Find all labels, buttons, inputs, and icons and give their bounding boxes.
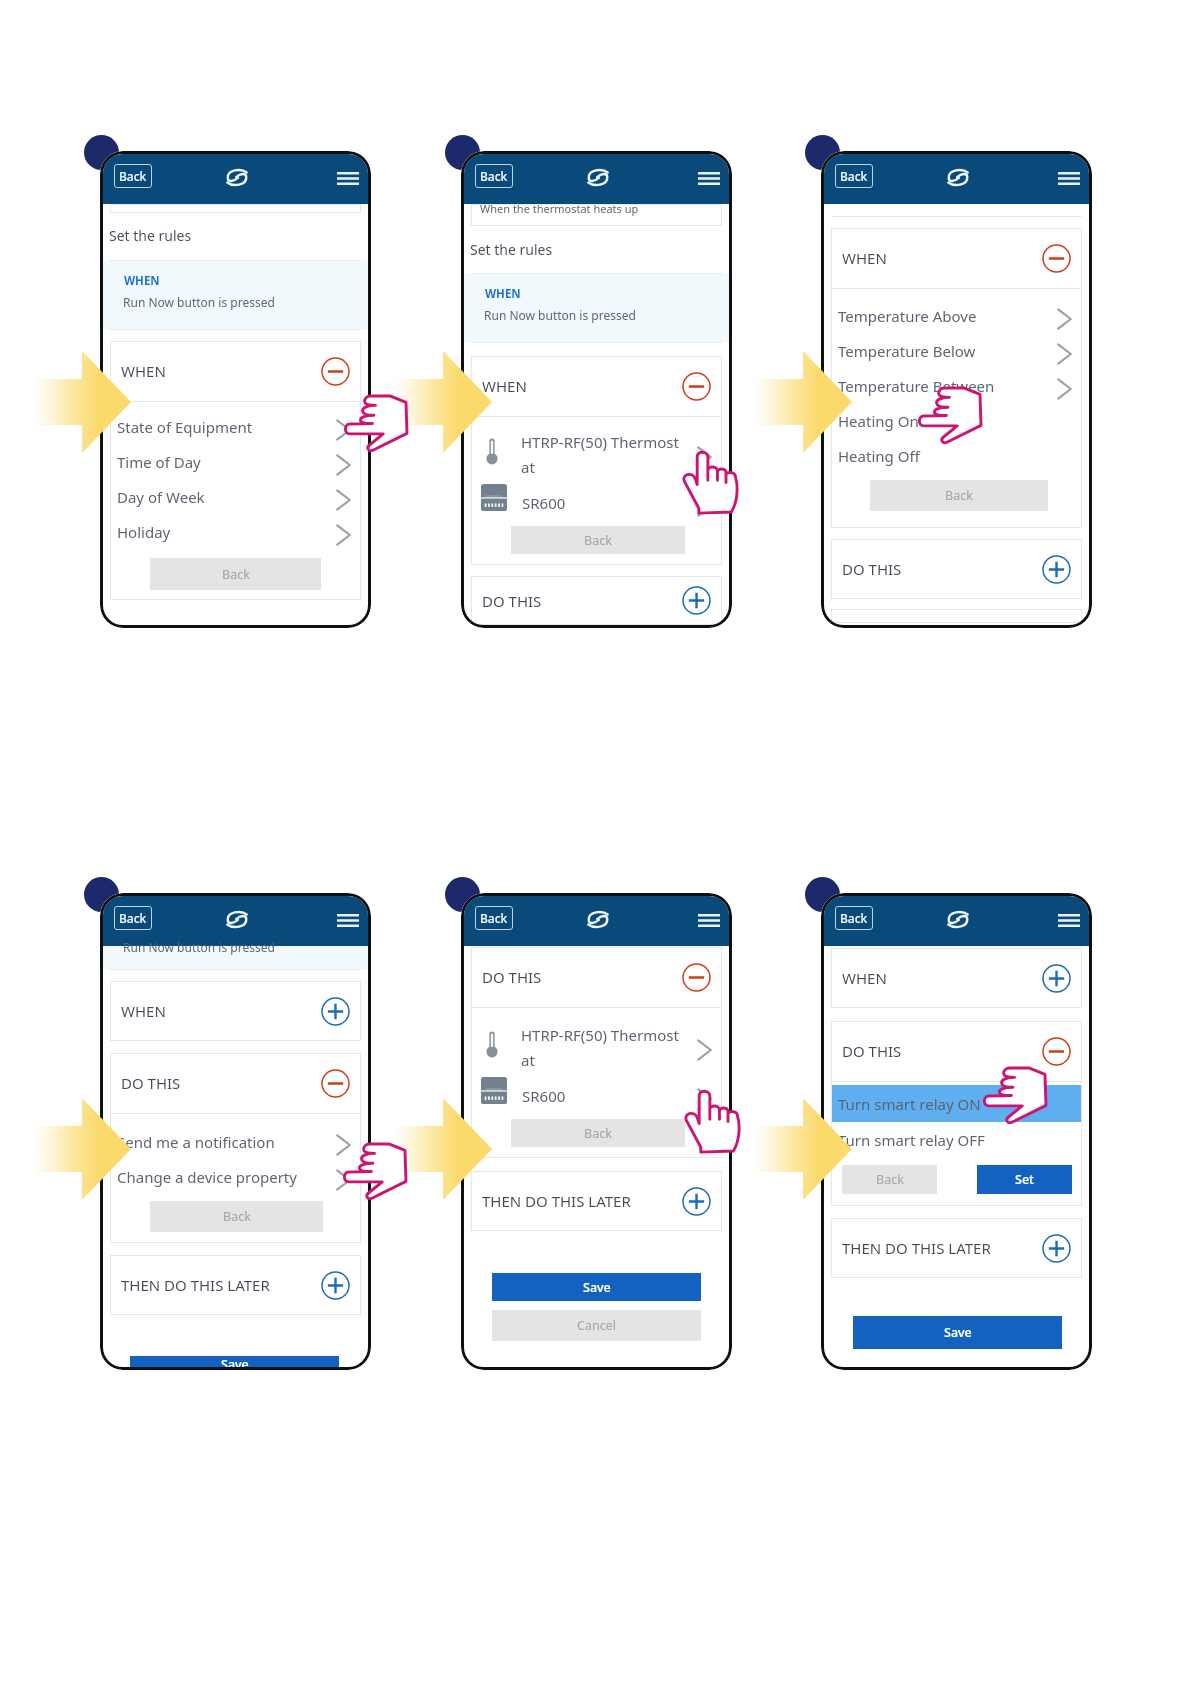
button[interactable]: Turn smart relay ON (831, 1085, 1082, 1122)
button[interactable]: Back (870, 480, 1048, 511)
button[interactable]: Add section (321, 997, 350, 1026)
button[interactable]: Back (511, 526, 685, 554)
button[interactable]: Remove section (321, 357, 350, 386)
button[interactable]: Temperature Above (831, 298, 1082, 333)
staticText: DO THIS (482, 967, 542, 987)
button[interactable]: Turn smart relay OFF (831, 1122, 1082, 1157)
button[interactable]: SR600 (471, 1076, 722, 1116)
button[interactable]: DO THIS (110, 1053, 361, 1113)
button[interactable]: Add section (1042, 1234, 1071, 1263)
button[interactable]: Back (114, 164, 152, 188)
button[interactable]: Set (977, 1165, 1072, 1194)
button[interactable]: Back (475, 164, 513, 188)
button[interactable]: THEN DO THIS LATER (471, 1171, 722, 1231)
staticText: Run Now button is pressed (484, 307, 636, 323)
button[interactable]: DO THIS (831, 539, 1082, 599)
button[interactable]: Remove section (1042, 244, 1071, 273)
button[interactable]: Back (842, 1165, 937, 1194)
button[interactable]: THEN DO THIS LATER (110, 1255, 361, 1315)
button[interactable]: Menu (333, 163, 363, 193)
button[interactable]: Change a device property (110, 1159, 361, 1194)
button[interactable]: WHEN (831, 948, 1082, 1008)
staticText: Set (1015, 1171, 1034, 1188)
button[interactable]: Remove section (321, 1069, 350, 1098)
staticText: Back (876, 1171, 904, 1188)
button[interactable]: State of Equipment (110, 409, 361, 444)
button[interactable]: Time of Day (110, 444, 361, 479)
staticText: HTRP-RF(50) Thermost at (521, 1025, 679, 1070)
button[interactable]: Heating Off (831, 438, 1082, 473)
button[interactable]: Menu (1054, 905, 1084, 935)
button[interactable]: THEN DO THIS LATER (831, 1218, 1082, 1278)
button[interactable]: Holiday (110, 514, 361, 549)
staticText: Heating Off (838, 446, 920, 466)
staticText: Back (840, 910, 868, 926)
button[interactable]: DO THIS (471, 576, 722, 625)
staticText: Back (945, 487, 973, 504)
button[interactable]: WHEN (471, 356, 722, 416)
button[interactable]: Back (150, 558, 321, 590)
staticText: SR600 (522, 1086, 680, 1106)
button[interactable]: Cancel (492, 1310, 701, 1341)
button[interactable]: Save (130, 1356, 339, 1367)
button[interactable]: Temperature Below (831, 333, 1082, 368)
button[interactable]: Home (222, 163, 252, 191)
button[interactable]: Add section (682, 586, 711, 615)
button[interactable]: Back (835, 164, 873, 188)
button[interactable]: Back (150, 1201, 323, 1232)
staticText: DO THIS (482, 591, 542, 611)
button[interactable]: WHEN (110, 341, 361, 401)
staticText: Back (584, 1125, 612, 1142)
staticText: Temperature Above (838, 306, 977, 326)
button[interactable]: Add section (1042, 555, 1071, 584)
button[interactable]: Save (853, 1316, 1062, 1349)
staticText: Change a device property (117, 1167, 297, 1187)
staticText: Time of Day (117, 452, 201, 472)
staticText: DO THIS (842, 1041, 902, 1061)
button[interactable]: Home (583, 905, 613, 933)
button[interactable]: Day of Week (110, 479, 361, 514)
button[interactable]: DO THIS (471, 947, 722, 1007)
staticText: Holiday (117, 522, 171, 542)
button[interactable]: WHEN (110, 981, 361, 1041)
button[interactable]: Home (222, 905, 252, 933)
button[interactable]: Back (475, 906, 513, 930)
button[interactable]: Temperature Between (831, 368, 1082, 403)
button[interactable]: Menu (1054, 163, 1084, 193)
button[interactable]: Add section (682, 1187, 711, 1216)
staticText: Back (584, 532, 612, 549)
button[interactable]: Add section (1042, 964, 1071, 993)
button[interactable]: WHEN (831, 228, 1082, 288)
button[interactable]: Back (114, 906, 152, 930)
button[interactable]: Save (492, 1273, 701, 1301)
staticText: HTRP-RF(50) Thermost at (521, 432, 679, 477)
button[interactable]: Home (943, 905, 973, 933)
button[interactable]: Remove section (682, 372, 711, 401)
button[interactable]: Send me a notification (110, 1124, 361, 1159)
staticText: Save (221, 1356, 249, 1367)
button[interactable]: Heating On (831, 403, 1082, 438)
button[interactable]: DO THIS (831, 1021, 1082, 1081)
staticText: WHEN (121, 361, 166, 381)
button[interactable]: HTRP-RF(50) Thermost at (471, 1018, 722, 1076)
staticText: State of Equipment (117, 417, 253, 437)
button[interactable]: HTRP-RF(50) Thermost at (471, 425, 722, 483)
button[interactable]: Menu (694, 163, 724, 193)
staticText: Day of Week (117, 487, 205, 507)
staticText: WHEN (482, 376, 527, 396)
button[interactable]: Add section (321, 1271, 350, 1300)
button[interactable]: Menu (333, 905, 363, 935)
staticText: Temperature Below (838, 341, 976, 361)
button[interactable]: Remove section (1042, 1037, 1071, 1066)
button[interactable]: Remove section (682, 963, 711, 992)
staticText: Save (944, 1324, 972, 1341)
button[interactable]: Back (511, 1119, 685, 1147)
staticText: When the thermostat heats up (480, 201, 639, 216)
button[interactable]: SR600 (471, 483, 722, 523)
button[interactable]: Home (583, 163, 613, 191)
button[interactable]: Home (943, 163, 973, 191)
staticText: Back (119, 168, 147, 184)
button[interactable]: Back (835, 906, 873, 930)
staticText: THEN DO THIS LATER (842, 1238, 991, 1258)
button[interactable]: Menu (694, 905, 724, 935)
